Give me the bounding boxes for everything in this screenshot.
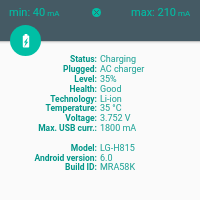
staticText: Android version: (0, 153, 97, 163)
staticText: max: 210 mA (131, 6, 191, 19)
staticText: Model: (0, 143, 97, 153)
staticText: 35% (100, 74, 117, 85)
staticText: 35 °C (100, 103, 122, 114)
staticText: Temperature: (0, 103, 97, 113)
staticText: Good (100, 84, 122, 95)
staticText: Level: (0, 74, 97, 84)
staticText: Technology: (0, 94, 97, 104)
staticText: Max. USB curr.: (0, 123, 97, 133)
staticText: 3.752 V (100, 113, 131, 124)
staticText: Li-ion (100, 94, 122, 105)
staticText: LG-H815 (100, 143, 135, 154)
staticText: Plugged: (0, 64, 97, 74)
staticText: Status: (0, 54, 97, 64)
staticText: Charging (100, 54, 136, 65)
staticText: Voltage: (0, 113, 97, 123)
staticText: AC charger (100, 64, 145, 75)
staticText: MRA58K (100, 162, 136, 173)
button[interactable]: Reset min and max (92, 8, 101, 17)
button[interactable]: Battery charging (10, 25, 41, 56)
staticText: Health: (0, 84, 97, 94)
staticText: min: 40 mA (9, 6, 60, 19)
staticText: 1800 mA (100, 123, 137, 134)
staticText: 6.0 (100, 153, 113, 164)
staticText: Build ID: (0, 162, 97, 172)
